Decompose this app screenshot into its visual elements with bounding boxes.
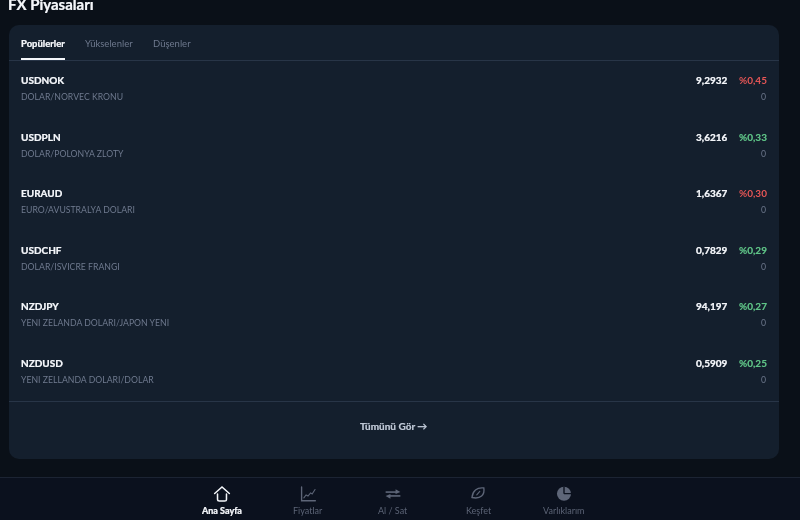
staticText: EURO/AVUSTRALYA DOLARI [21, 204, 135, 214]
other: Al / Sat [385, 486, 401, 502]
button[interactable]: Tümünü Gör → [9, 402, 779, 459]
staticText: DOLAR/NORVEC KRONU [21, 91, 124, 101]
staticText: %0,45 [739, 74, 767, 86]
staticText: 94,197 [696, 300, 728, 312]
staticText: 0,7829 [696, 244, 728, 256]
staticText: Fiyatlar [293, 505, 323, 516]
staticText: 0,5909 [696, 357, 728, 369]
staticText: Ana Sayfa [202, 505, 242, 516]
button[interactable]: Popülerler [11, 25, 75, 60]
button[interactable]: Düşenler [143, 25, 201, 60]
other: Keşfet [471, 486, 487, 502]
staticText: NZDJPY [21, 300, 59, 312]
staticText: Varlıklarım [543, 505, 585, 516]
staticText: %0,29 [739, 244, 767, 256]
button[interactable]: Varlıklarım [524, 478, 604, 520]
button[interactable]: USDNOK [9, 61, 779, 118]
staticText: 1,6367 [696, 187, 728, 199]
staticText: EURAUD [21, 187, 63, 199]
other: Varlıklarım [556, 486, 572, 502]
staticText: Popülerler [21, 38, 65, 49]
staticText: Keşfet [466, 505, 492, 516]
staticText: %0,27 [739, 300, 767, 312]
button[interactable]: Ana Sayfa [182, 478, 262, 520]
staticText: 0 [761, 91, 767, 101]
staticText: Düşenler [153, 38, 191, 49]
button[interactable]: Keşfet [439, 478, 519, 520]
staticText: YENI ZELLANDA DOLARI/DOLAR [21, 374, 154, 384]
button[interactable]: Al / Sat [353, 478, 433, 520]
staticText: 0 [761, 317, 767, 327]
staticText: Tümünü Gör → [360, 420, 428, 432]
staticText: 3,6216 [696, 131, 728, 143]
staticText: 0 [761, 148, 767, 158]
staticText: %0,30 [739, 187, 767, 199]
staticText: Al / Sat [378, 505, 408, 516]
button[interactable]: USDPLN [9, 118, 779, 174]
staticText: DOLAR/POLONYA ZLOTY [21, 148, 124, 158]
staticText: USDPLN [21, 131, 61, 143]
other: Ana Sayfa [214, 486, 230, 502]
staticText: YENI ZELANDA DOLARI/JAPON YENI [21, 317, 170, 327]
staticText: FX Piyasaları [8, 0, 94, 13]
button[interactable]: Fiyatlar [268, 478, 348, 520]
staticText: NZDUSD [21, 357, 63, 369]
staticText: Yükselenler [85, 38, 133, 49]
staticText: 0 [761, 261, 767, 271]
button[interactable]: NZDJPY [9, 287, 779, 344]
button[interactable]: Yükselenler [75, 25, 143, 60]
staticText: 0 [761, 204, 767, 214]
staticText: USDCHF [21, 244, 62, 256]
staticText: DOLAR/ISVICRE FRANGI [21, 261, 120, 271]
staticText: 0 [761, 374, 767, 384]
button[interactable]: NZDUSD [9, 344, 779, 401]
staticText: %0,33 [739, 131, 767, 143]
staticText: 9,2932 [696, 74, 728, 86]
other: Fiyatlar [300, 486, 316, 502]
button[interactable]: USDCHF [9, 231, 779, 287]
staticText: %0,25 [739, 357, 767, 369]
staticText: USDNOK [21, 74, 65, 86]
button[interactable]: EURAUD [9, 174, 779, 231]
